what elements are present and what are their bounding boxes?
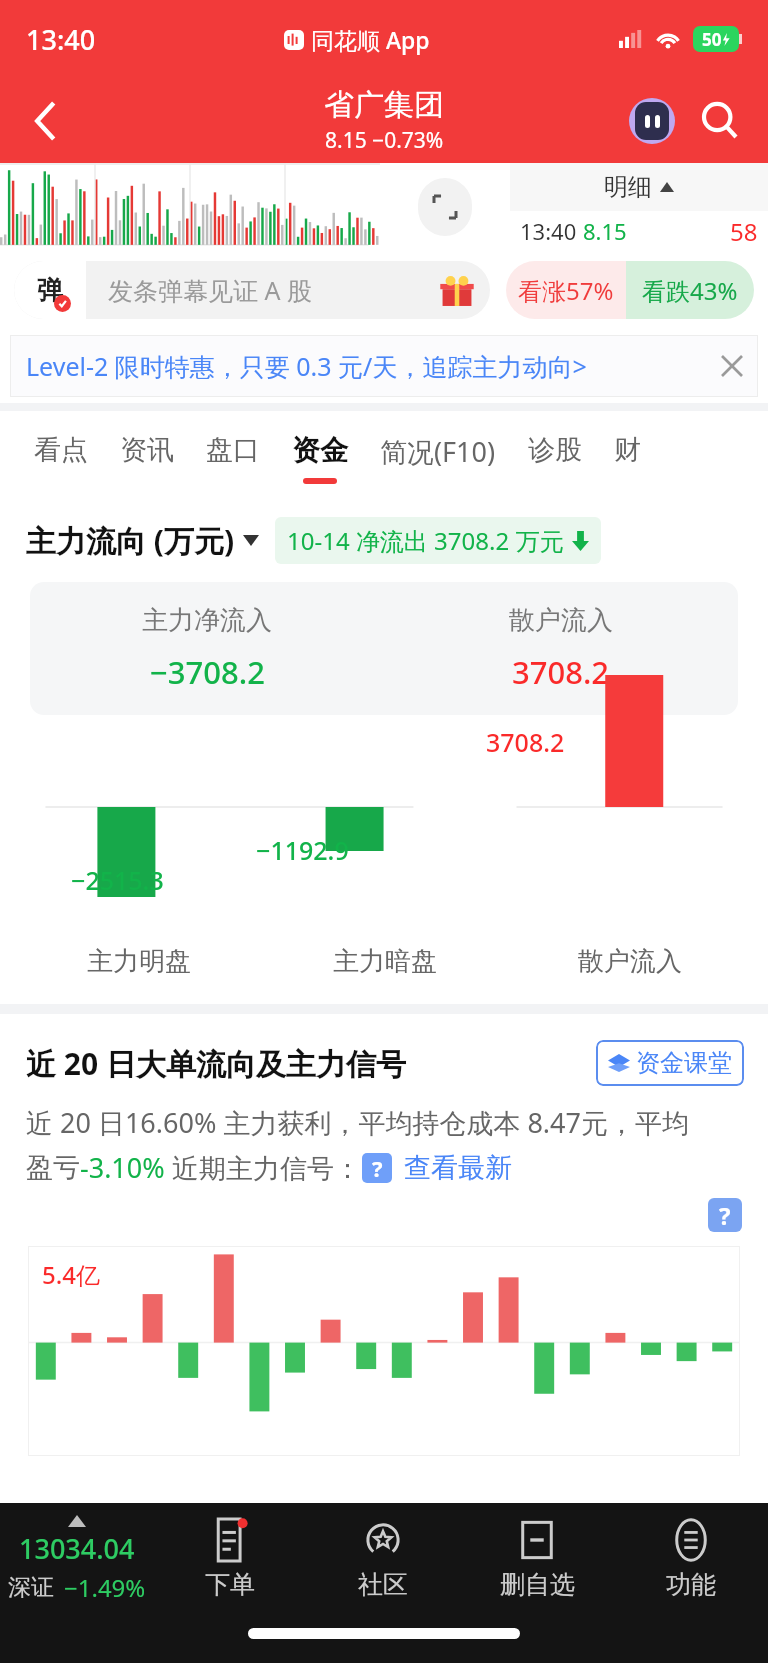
staticText: 弹	[37, 274, 63, 307]
staticText: 社区	[358, 1569, 408, 1600]
staticText: 删自选	[500, 1569, 575, 1600]
staticText: 看跌43%	[642, 274, 738, 307]
staticText: 13:40	[26, 21, 96, 58]
button[interactable]: 简况(F10)	[364, 411, 512, 497]
staticText: 8.15 −0.73%	[325, 126, 444, 155]
button[interactable]: 看跌43%	[626, 261, 754, 319]
staticText: 财	[614, 433, 641, 467]
staticText: 58	[730, 215, 758, 248]
button[interactable]: 诊股	[512, 411, 598, 497]
button[interactable]: Help	[362, 1153, 392, 1183]
button[interactable]: Chart help	[708, 1198, 742, 1232]
button[interactable]: 看点	[18, 411, 104, 497]
button[interactable]: 明细	[510, 163, 768, 211]
staticText: 10-14 净流出 3708.2 万元	[287, 524, 564, 557]
staticText: 省广集团	[324, 86, 444, 124]
staticText: 看点	[34, 433, 88, 467]
staticText: 资讯	[120, 433, 174, 467]
staticText: −1192.9	[256, 833, 349, 867]
staticText: 主力流向 (万元)	[26, 520, 235, 561]
staticText: 近期主力信号：	[165, 1149, 362, 1186]
button[interactable]: Close	[706, 340, 758, 392]
staticText: 3708.2	[486, 725, 565, 759]
staticText: 简况(F10)	[380, 433, 496, 470]
staticText: Level-2 限时特惠，只要 0.3 元/天，追踪主力动向>	[26, 349, 587, 383]
staticText: 主力净流入	[142, 604, 272, 637]
staticText: 散户流入	[509, 604, 613, 637]
staticText: 诊股	[528, 433, 582, 467]
button[interactable]: Back	[18, 93, 74, 149]
staticText: 13:40	[520, 216, 577, 246]
button[interactable]: 社区	[306, 1503, 460, 1615]
button[interactable]: 功能	[614, 1503, 768, 1615]
button[interactable]: 13034.04	[0, 1515, 153, 1604]
button[interactable]: Search	[692, 93, 748, 149]
staticText: 盈亏	[26, 1151, 80, 1185]
staticText: -3.10%	[80, 1149, 165, 1186]
button[interactable]: 资金	[276, 411, 364, 497]
button[interactable]: 主力流向 (万元)	[26, 520, 259, 561]
button[interactable]: 删自选	[460, 1503, 614, 1615]
button[interactable]: Level-2 限时特惠，只要 0.3 元/天，追踪主力动向>	[10, 335, 758, 397]
staticText: 深证	[8, 1573, 54, 1602]
staticText: 功能	[666, 1569, 716, 1600]
button[interactable]: 资讯	[104, 411, 190, 497]
button[interactable]: 资金课堂	[608, 1048, 732, 1078]
button[interactable]: Fullscreen	[418, 178, 472, 236]
button[interactable]: 10-14 净流出 3708.2 万元	[287, 524, 589, 557]
staticText: 同花顺 App	[311, 24, 430, 55]
staticText: 8.15	[583, 216, 627, 246]
staticText: 主力暗盘	[333, 945, 437, 978]
button[interactable]: 查看最新	[404, 1151, 512, 1185]
staticText: 资金	[292, 433, 348, 468]
staticText: 近 20 日大单流向及主力信号	[26, 1043, 406, 1084]
staticText: 资金课堂	[636, 1048, 732, 1078]
button[interactable]: AI assistant	[624, 93, 680, 149]
staticText: −2515.3	[71, 863, 164, 897]
staticText: 3708.2	[512, 651, 610, 693]
staticText: 盘口	[206, 433, 260, 467]
staticText: ?	[719, 1199, 731, 1232]
staticText: 下单	[205, 1569, 255, 1600]
staticText: 近 20 日16.60% 主力获利，平均持仓成本 8.47元，平均	[26, 1104, 689, 1141]
staticText: 50	[702, 28, 722, 51]
staticText: 主力明盘	[87, 945, 191, 978]
staticText: 明细	[604, 172, 652, 202]
staticText: −1.49%	[64, 1571, 146, 1604]
button[interactable]: 下单	[153, 1503, 306, 1615]
staticText: 看涨57%	[518, 274, 614, 307]
staticText: 发条弹幕见证 A 股	[108, 273, 312, 307]
button[interactable]: 看涨57%	[506, 261, 626, 319]
button[interactable]: 弹	[14, 261, 490, 319]
staticText: −3708.2	[150, 651, 265, 693]
staticText: 13034.04	[19, 1530, 135, 1567]
staticText: ?	[372, 1153, 383, 1183]
staticText: 散户流入	[578, 945, 682, 978]
button[interactable]: 财	[598, 411, 657, 497]
button[interactable]: 盘口	[190, 411, 276, 497]
staticText: 5.4亿	[42, 1258, 100, 1291]
